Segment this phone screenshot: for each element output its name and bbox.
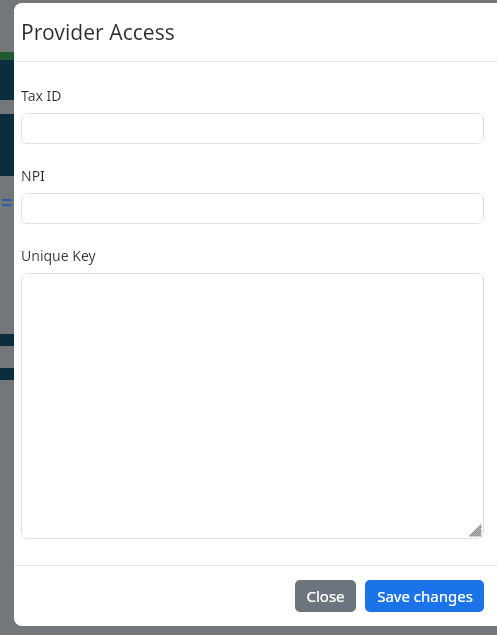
button[interactable] xyxy=(21,113,484,144)
staticText: Save changes xyxy=(377,586,473,606)
button[interactable]: Save changes xyxy=(365,580,484,612)
staticText: Unique Key xyxy=(21,246,96,265)
staticText: Tax ID xyxy=(21,86,62,105)
button[interactable]: Close xyxy=(295,580,356,612)
staticText: NPI xyxy=(21,166,45,185)
staticText: Provider Access xyxy=(21,18,175,47)
button[interactable] xyxy=(21,273,484,539)
staticText: Close xyxy=(306,586,345,606)
button[interactable] xyxy=(21,193,484,224)
